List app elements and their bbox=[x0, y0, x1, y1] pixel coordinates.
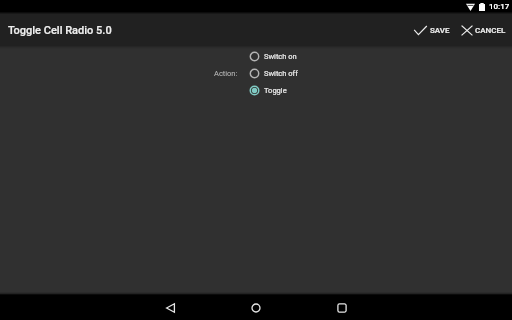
button[interactable]: CANCEL bbox=[458, 20, 512, 41]
staticText: Switch off bbox=[264, 69, 298, 78]
button[interactable]: Switch on bbox=[243, 48, 303, 65]
button[interactable]: Back bbox=[150, 295, 190, 320]
button[interactable]: Recent apps bbox=[322, 295, 362, 320]
button[interactable]: Switch off bbox=[243, 65, 304, 82]
staticText: 10:17 bbox=[489, 2, 510, 11]
button[interactable]: Home bbox=[236, 295, 276, 320]
button[interactable]: SAVE bbox=[406, 20, 453, 41]
staticText: Switch on bbox=[264, 52, 297, 61]
button[interactable]: Toggle bbox=[243, 82, 293, 99]
staticText: Action: bbox=[214, 69, 238, 78]
staticText: SAVE bbox=[430, 26, 450, 35]
staticText: Toggle Cell Radio 5.0 bbox=[8, 24, 112, 37]
staticText: CANCEL bbox=[475, 26, 506, 35]
staticText: Toggle bbox=[264, 86, 287, 95]
